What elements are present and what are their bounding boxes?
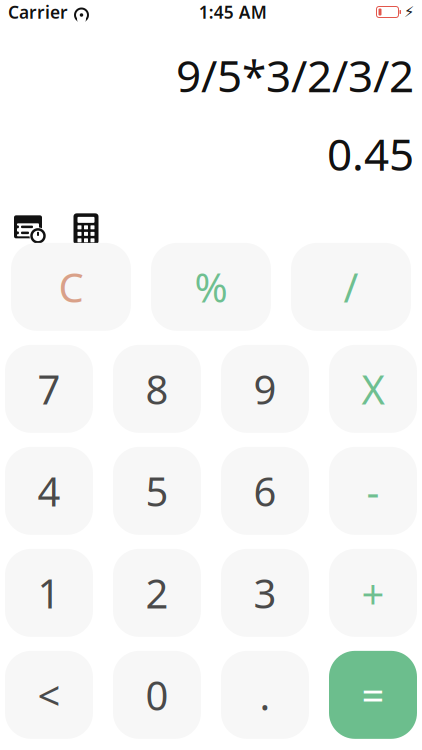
button[interactable]: =	[329, 651, 417, 739]
button[interactable]: C	[11, 243, 131, 331]
staticText: 3	[253, 566, 276, 619]
button[interactable]: .	[221, 651, 309, 739]
button[interactable]: 6	[221, 447, 309, 535]
staticText: 9	[253, 362, 276, 415]
staticText: =	[361, 668, 384, 721]
staticText: -	[366, 464, 379, 517]
staticText: 6	[253, 464, 276, 517]
staticText: %	[194, 260, 227, 313]
staticText: 4	[37, 464, 60, 517]
button[interactable]: 2	[113, 549, 201, 637]
staticText: 1	[37, 566, 60, 619]
button[interactable]: 5	[113, 447, 201, 535]
staticText: +	[361, 566, 384, 619]
staticText: 9/5*3/2/3/2	[176, 46, 414, 104]
button[interactable]: +	[329, 549, 417, 637]
staticText: 0	[145, 668, 168, 721]
staticText: X	[361, 362, 384, 415]
button[interactable]: 4	[5, 447, 93, 535]
staticText: 2	[145, 566, 168, 619]
button[interactable]: <	[5, 651, 93, 739]
staticText: 0.45	[327, 124, 414, 183]
staticText: 8	[145, 362, 168, 415]
staticText: Carrier	[8, 0, 68, 23]
button[interactable]: History	[2, 207, 58, 251]
button[interactable]: 8	[113, 345, 201, 433]
staticText: .	[259, 668, 270, 721]
button[interactable]: 0	[113, 651, 201, 739]
button[interactable]: 3	[221, 549, 309, 637]
button[interactable]: 9	[221, 345, 309, 433]
button[interactable]: /	[291, 243, 411, 331]
button[interactable]: 7	[5, 345, 93, 433]
staticText: ⚡︎	[404, 4, 414, 20]
staticText: <	[37, 668, 60, 721]
staticText: C	[58, 260, 83, 313]
staticText: 7	[37, 362, 60, 415]
button[interactable]: %	[151, 243, 271, 331]
staticText: 5	[145, 464, 168, 517]
button[interactable]: Calculator	[58, 207, 114, 251]
staticText: 1:45 AM	[199, 0, 267, 23]
button[interactable]: X	[329, 345, 417, 433]
staticText: /	[343, 260, 358, 313]
button[interactable]: 1	[5, 549, 93, 637]
button[interactable]: -	[329, 447, 417, 535]
